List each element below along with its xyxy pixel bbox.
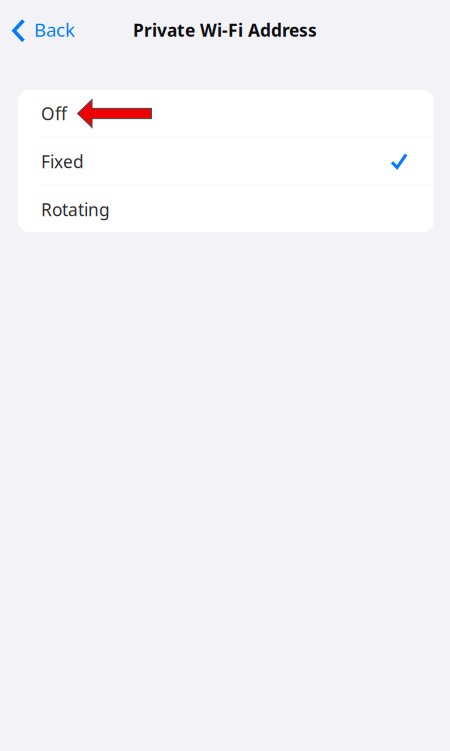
button[interactable]: Off bbox=[18, 90, 434, 136]
staticText: Back bbox=[34, 17, 75, 42]
button[interactable]: Back bbox=[0, 8, 85, 52]
staticText: Rotating bbox=[41, 198, 110, 221]
staticText: Fixed bbox=[41, 150, 84, 173]
staticText: Private Wi-Fi Address bbox=[133, 18, 317, 41]
staticText: Off bbox=[41, 102, 67, 125]
button[interactable]: Rotating bbox=[18, 186, 434, 232]
button[interactable]: Fixed bbox=[18, 138, 434, 184]
